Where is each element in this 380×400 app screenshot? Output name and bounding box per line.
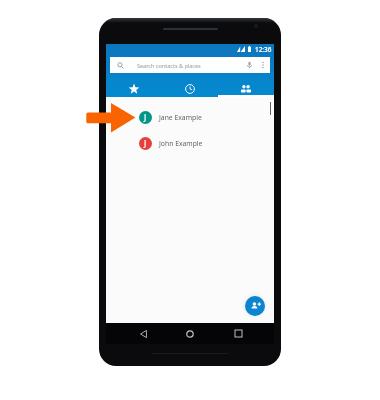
button[interactable]: Search contacts & places (110, 57, 270, 73)
other: More options (261, 61, 265, 69)
button[interactable]: Recent apps (227, 323, 249, 344)
other: Voice search (247, 61, 252, 69)
button[interactable]: Home (179, 323, 201, 344)
button[interactable]: Add contact (241, 292, 268, 319)
staticText: Search contacts & places (137, 62, 201, 69)
button[interactable]: Contacts (218, 74, 274, 97)
staticText: John Example (159, 139, 203, 148)
staticText: 12:36 (255, 45, 272, 54)
button[interactable]: Recents (162, 74, 218, 97)
button[interactable]: Favorites (106, 74, 162, 97)
button[interactable]: Back (132, 323, 154, 344)
staticText: J (144, 138, 147, 149)
button[interactable]: J (106, 130, 274, 156)
button[interactable]: J (106, 104, 274, 130)
staticText: J (144, 112, 147, 123)
staticText: Jane Example (159, 113, 202, 122)
